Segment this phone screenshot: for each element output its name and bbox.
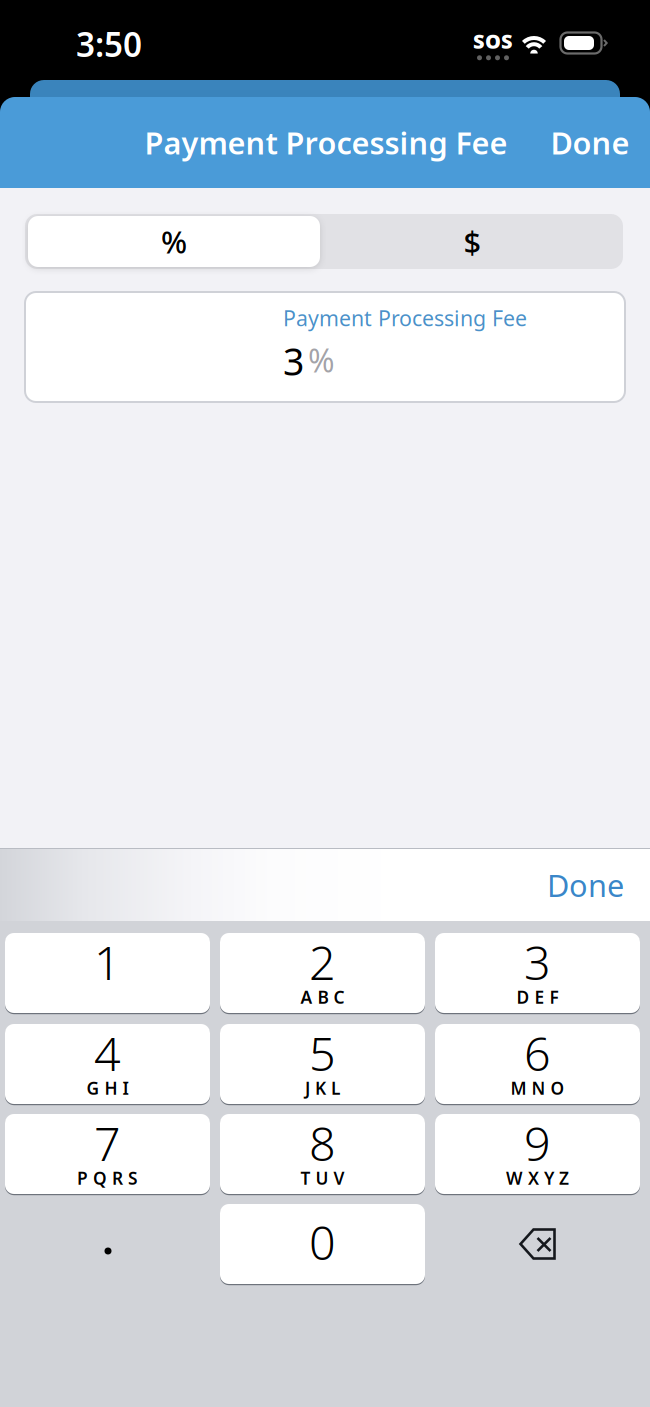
button[interactable]: Done	[535, 118, 645, 166]
staticText: T U V	[300, 1166, 344, 1189]
button[interactable]: 8	[220, 1114, 425, 1194]
staticText: Payment Processing Fee	[283, 304, 527, 332]
staticText: Done	[547, 865, 624, 905]
staticText: 7	[94, 1112, 121, 1174]
button[interactable]: Done	[504, 859, 624, 911]
button[interactable]: 9	[435, 1114, 640, 1194]
button[interactable]: 3	[435, 933, 640, 1013]
button[interactable]: 7	[5, 1114, 210, 1194]
button[interactable]: 1	[5, 933, 210, 1013]
staticText: %	[161, 221, 187, 262]
button[interactable]: Delete	[435, 1204, 640, 1284]
staticText: M N O	[510, 1076, 564, 1099]
staticText: 3	[283, 336, 304, 386]
staticText: 9	[524, 1112, 551, 1174]
staticText: J K L	[305, 1076, 340, 1099]
staticText: 3:50	[76, 22, 142, 66]
button[interactable]: 5	[220, 1024, 425, 1104]
staticText: 5	[309, 1022, 336, 1084]
button[interactable]: 4	[5, 1024, 210, 1104]
staticText: G H I	[86, 1076, 128, 1099]
staticText: 8	[309, 1112, 336, 1174]
staticText: 1	[94, 931, 121, 993]
staticText: W X Y Z	[506, 1166, 569, 1189]
staticText: 6	[524, 1022, 551, 1084]
staticText: Payment Processing Fee	[144, 122, 507, 163]
staticText: 2	[309, 931, 336, 993]
staticText: SOS	[473, 28, 513, 54]
staticText: $	[463, 221, 481, 262]
button[interactable]: Decimal point	[5, 1204, 210, 1284]
staticText: D E F	[516, 985, 558, 1008]
button[interactable]: 2	[220, 933, 425, 1013]
button[interactable]: %	[28, 216, 320, 267]
button[interactable]: 0	[220, 1204, 425, 1284]
button[interactable]: 6	[435, 1024, 640, 1104]
staticText: %	[308, 339, 335, 381]
staticText: P Q R S	[77, 1166, 138, 1189]
button[interactable]: $	[325, 214, 620, 269]
staticText: 0	[309, 1211, 336, 1273]
staticText: Done	[550, 122, 629, 163]
staticText: 4	[94, 1022, 121, 1084]
staticText: A B C	[300, 985, 344, 1008]
staticText: 3	[524, 931, 551, 993]
